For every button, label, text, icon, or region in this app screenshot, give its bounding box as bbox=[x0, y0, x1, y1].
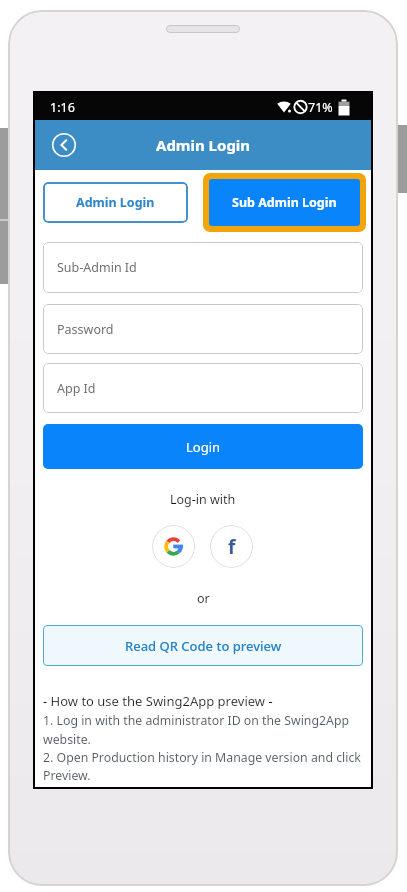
staticText: Password bbox=[57, 321, 114, 338]
button[interactable]: Read QR Code to preview bbox=[43, 625, 363, 666]
staticText: 71% bbox=[308, 99, 333, 116]
button[interactable]: Login bbox=[43, 424, 363, 469]
staticText: App Id bbox=[57, 380, 96, 397]
staticText: Read QR Code to preview bbox=[125, 637, 282, 655]
staticText: Log-in with bbox=[170, 491, 236, 508]
staticText: Sub Admin Login bbox=[232, 194, 337, 211]
button[interactable] bbox=[152, 525, 195, 568]
staticText: f bbox=[228, 534, 236, 560]
button[interactable] bbox=[51, 132, 77, 158]
staticText: Sub-Admin Id bbox=[57, 259, 137, 276]
staticText: Login bbox=[186, 438, 221, 456]
staticText: Admin Login bbox=[156, 135, 251, 155]
button[interactable]: Sub Admin Login bbox=[209, 179, 360, 226]
staticText: Admin Login bbox=[76, 194, 155, 211]
button[interactable]: App Id bbox=[43, 363, 363, 413]
button[interactable]: f bbox=[210, 525, 253, 568]
button[interactable]: Admin Login bbox=[43, 182, 188, 223]
button[interactable]: Sub-Admin Id bbox=[43, 242, 363, 293]
button[interactable]: Password bbox=[43, 304, 363, 354]
staticText: - How to use the Swing2App preview - bbox=[43, 692, 273, 710]
staticText: 1:16 bbox=[50, 99, 75, 116]
staticText: 1. Log in with the administrator ID on t… bbox=[43, 712, 361, 783]
staticText: or bbox=[197, 590, 210, 607]
